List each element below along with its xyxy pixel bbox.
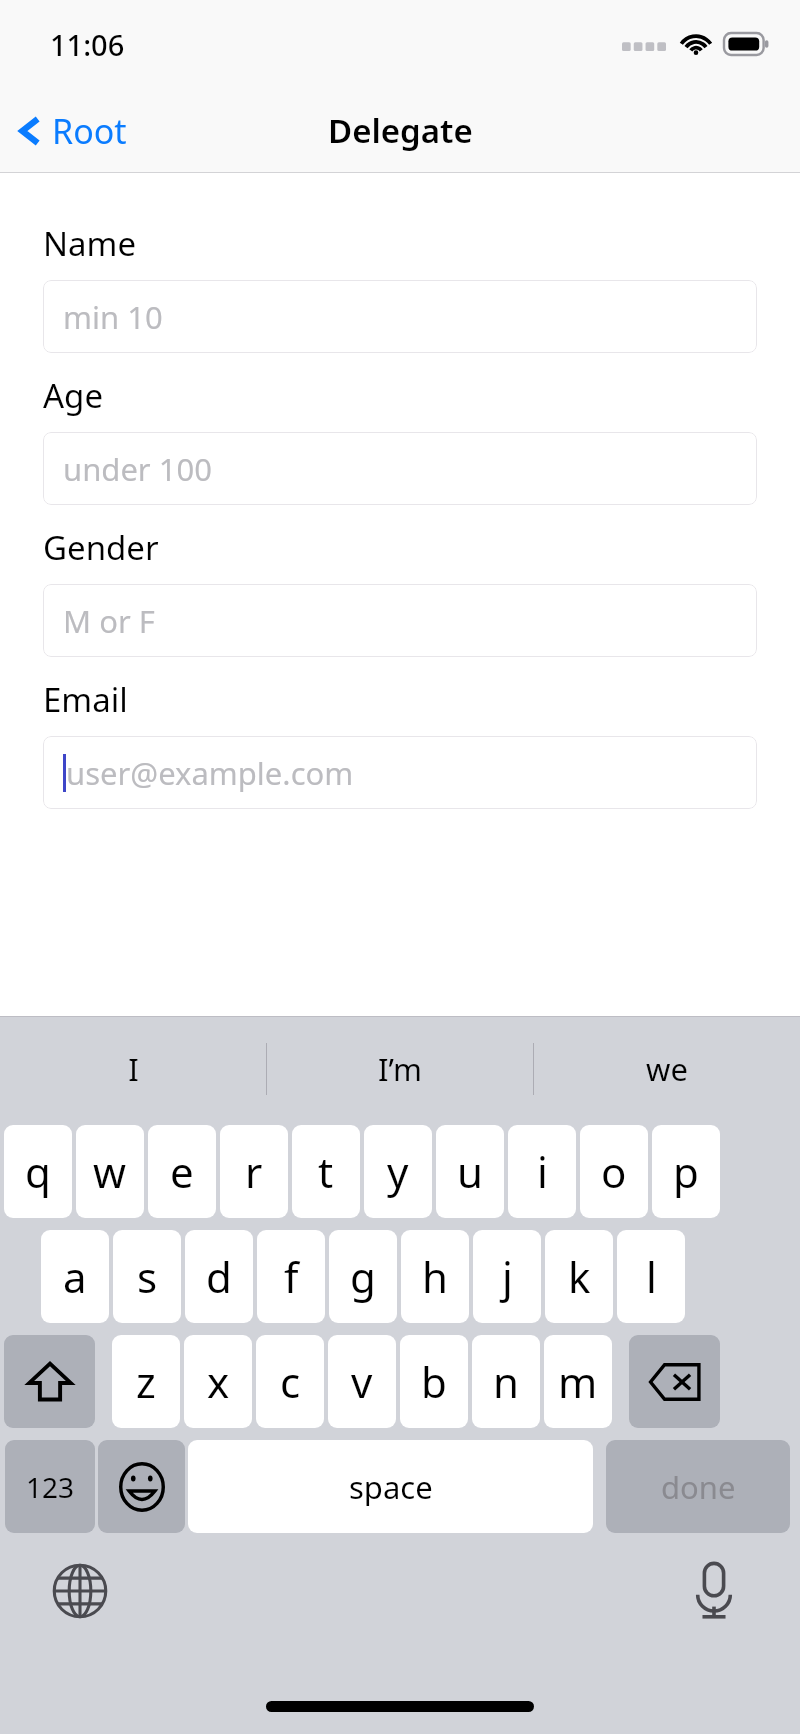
staticText: Email [43,677,128,722]
button[interactable]: I [0,1017,266,1121]
staticText: Gender [43,525,159,570]
button[interactable]: e [148,1125,216,1218]
staticText: I [128,1048,139,1090]
button[interactable]: h [401,1230,469,1323]
button[interactable]: a [41,1230,109,1323]
button[interactable]: s [113,1230,181,1323]
staticText: x [207,1353,230,1410]
button[interactable]: v [328,1335,396,1428]
button[interactable]: we [534,1017,800,1121]
button[interactable]: min 10 [43,280,757,353]
button[interactable]: Backspace [629,1335,720,1428]
button[interactable]: j [473,1230,541,1323]
staticText: y [387,1143,409,1200]
button[interactable]: x [184,1335,252,1428]
staticText: under 100 [63,448,212,490]
staticText: f [284,1248,299,1305]
staticText: m [558,1353,598,1410]
button[interactable]: f [257,1230,325,1323]
staticText: e [170,1143,194,1200]
button[interactable]: 123 [5,1440,95,1533]
staticText: min 10 [63,296,163,338]
button[interactable]: done [606,1440,790,1533]
staticText: a [63,1248,87,1305]
staticText: d [206,1248,232,1305]
button[interactable]: q [4,1125,72,1218]
button[interactable]: M or F [43,584,757,657]
button[interactable]: Change keyboard [44,1555,116,1627]
staticText: p [673,1143,699,1200]
button[interactable]: g [329,1230,397,1323]
staticText: b [421,1353,447,1410]
button[interactable]: Shift [4,1335,95,1428]
staticText: t [318,1143,334,1200]
button[interactable]: r [220,1125,288,1218]
staticText: 11:06 [50,25,125,64]
staticText: Delegate [328,108,473,153]
staticText: Name [43,221,137,266]
button[interactable]: space [188,1440,593,1533]
staticText: user@example.com [66,752,354,794]
button[interactable]: o [580,1125,648,1218]
staticText: done [661,1466,736,1508]
button[interactable]: y [364,1125,432,1218]
staticText: l [646,1248,657,1305]
staticText: q [25,1143,51,1200]
button[interactable]: p [652,1125,720,1218]
button[interactable]: Dictation [678,1555,750,1627]
staticText: we [646,1048,688,1090]
staticText: i [537,1143,548,1200]
staticText: k [568,1248,591,1305]
staticText: Age [43,373,103,418]
staticText: s [137,1248,158,1305]
button[interactable]: c [256,1335,324,1428]
staticText: 123 [26,1468,75,1506]
button[interactable]: n [472,1335,540,1428]
button[interactable]: user@example.com [43,736,757,809]
staticText: h [422,1248,448,1305]
staticText: M or F [63,600,155,642]
staticText: j [502,1248,513,1305]
staticText: w [93,1143,127,1200]
staticText: u [457,1143,483,1200]
staticText: g [350,1248,376,1305]
button[interactable]: w [76,1125,144,1218]
button[interactable]: z [112,1335,180,1428]
button[interactable]: under 100 [43,432,757,505]
staticText: I’m [378,1048,422,1090]
staticText: v [351,1353,373,1410]
button[interactable]: Root [0,88,145,173]
button[interactable]: k [545,1230,613,1323]
staticText: r [245,1143,263,1200]
button[interactable]: l [617,1230,685,1323]
staticText: c [280,1353,301,1410]
staticText: Root [52,108,127,154]
staticText: n [493,1353,519,1410]
button[interactable]: I’m [267,1017,533,1121]
button[interactable]: i [508,1125,576,1218]
staticText: o [601,1143,627,1200]
button[interactable]: m [544,1335,612,1428]
button[interactable]: u [436,1125,504,1218]
button[interactable]: Emoji [98,1440,185,1533]
button[interactable]: b [400,1335,468,1428]
button[interactable]: d [185,1230,253,1323]
staticText: space [349,1466,433,1508]
staticText: z [136,1353,156,1410]
button[interactable]: t [292,1125,360,1218]
